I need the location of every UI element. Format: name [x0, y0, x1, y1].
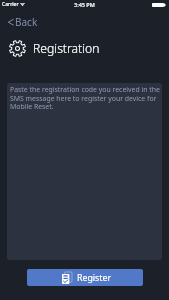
other: Settings: [9, 40, 26, 57]
staticText: Registration: [33, 40, 100, 57]
staticText: Register: [77, 272, 112, 284]
staticText: Back: [15, 15, 38, 28]
button[interactable]: Back: [4, 15, 42, 28]
button[interactable]: Register: [27, 269, 143, 286]
button[interactable]: Paste the registration code you received…: [7, 83, 162, 260]
staticText: 3:45 PM: [74, 1, 95, 8]
staticText: Carrier: [2, 1, 19, 8]
staticText: Paste the registration code you received…: [10, 85, 162, 111]
